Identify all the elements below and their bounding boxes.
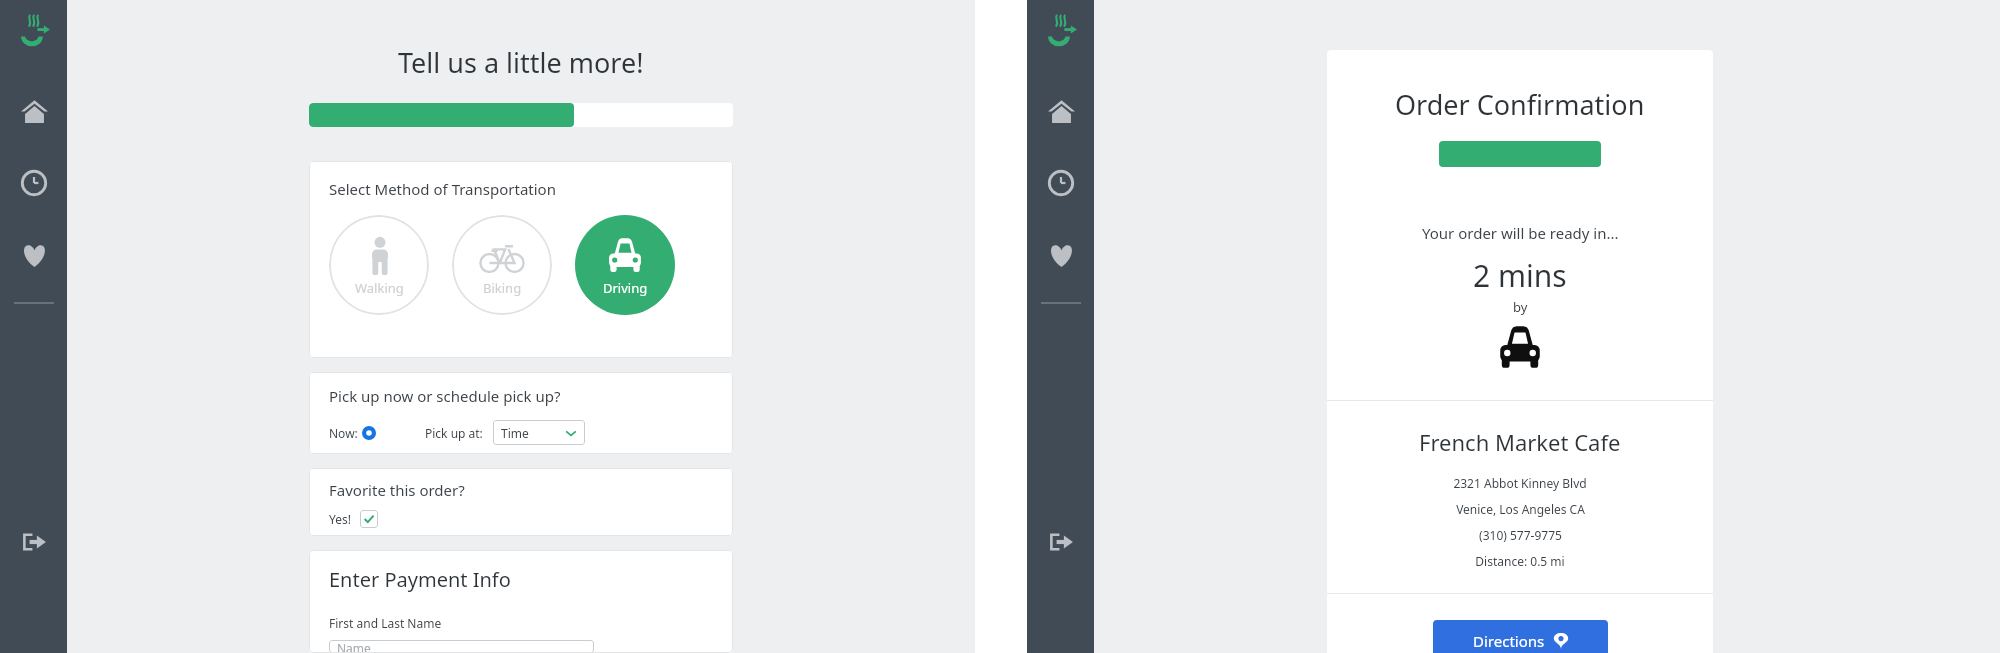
button[interactable]: Driving [575,215,675,315]
button[interactable]: Favorites [1040,234,1082,276]
staticText: First and Last Name [329,615,442,631]
staticText: Venice, Los Angeles CA [1456,501,1585,517]
button[interactable]: Favorites [13,234,55,276]
button[interactable]: Name [329,640,594,653]
staticText: 2 mins [1473,255,1567,296]
staticText: Name [337,640,371,653]
staticText: Select Method of Transportation [329,179,556,199]
staticText: Tell us a little more! [398,44,644,81]
staticText: Favorite this order? [329,480,465,500]
staticText: Yes! [329,511,351,527]
button[interactable]: Home logo [1037,6,1085,54]
button[interactable]: Home [1040,90,1082,132]
staticText: Walking [355,279,404,297]
button[interactable]: Directions [1433,620,1608,653]
button[interactable]: Log out [1040,521,1082,563]
button[interactable]: Pick up now [361,425,377,441]
staticText: Now: [329,425,358,441]
staticText: Biking [483,279,522,297]
button[interactable]: Biking [452,215,552,315]
staticText: Pick up at: [425,425,483,441]
button[interactable]: Time [493,420,585,445]
staticText: (310) 577-9775 [1479,527,1562,543]
button[interactable]: Favorite this order [360,510,378,528]
staticText: Time [501,425,529,441]
staticText: Enter Payment Info [329,566,511,593]
button[interactable]: Home logo [10,6,58,54]
staticText: by [1513,298,1528,316]
button[interactable]: Order history [13,162,55,204]
staticText: Pick up now or schedule pick up? [329,386,561,406]
staticText: French Market Cafe [1419,427,1621,457]
button[interactable]: Home [13,90,55,132]
staticText: Order Confirmation [1395,86,1645,123]
button[interactable]: Log out [13,521,55,563]
staticText: Driving [603,279,648,297]
staticText: Directions [1473,631,1545,651]
button[interactable]: Walking [329,215,429,315]
staticText: Your order will be ready in... [1422,223,1619,243]
staticText: Distance: 0.5 mi [1475,553,1565,569]
staticText: 2321 Abbot Kinney Blvd [1453,475,1587,491]
button[interactable]: Order history [1040,162,1082,204]
